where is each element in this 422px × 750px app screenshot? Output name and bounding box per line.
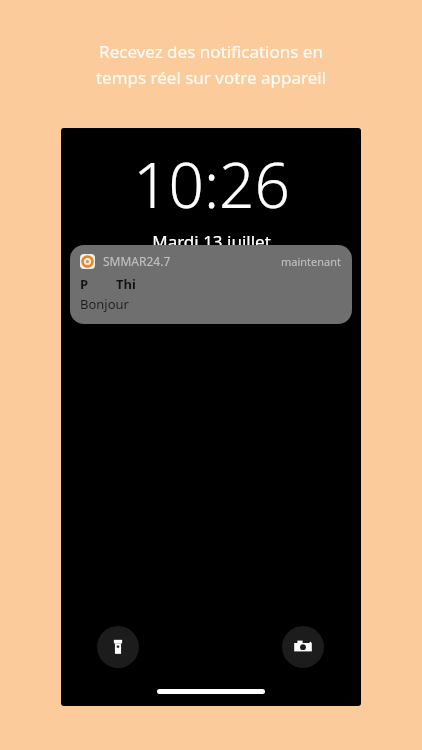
- button[interactable]: SMMAR24.7: [70, 245, 352, 324]
- staticText: 10:26: [133, 142, 290, 226]
- staticText: P: [80, 275, 89, 293]
- staticText: SMMAR24.7: [103, 253, 171, 269]
- button[interactable]: Flashlight: [97, 626, 139, 668]
- staticText: Recevez des notifications en temps réel …: [42, 40, 380, 89]
- staticText: Bonjour: [80, 295, 129, 313]
- staticText: Thi: [116, 275, 136, 293]
- staticText: maintenant: [281, 254, 342, 269]
- staticText: Mardi 13 juillet: [152, 230, 271, 253]
- button[interactable]: Camera: [282, 626, 324, 668]
